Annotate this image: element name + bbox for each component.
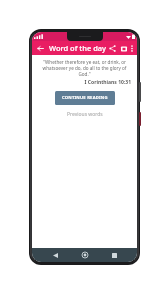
button[interactable]: Back [49, 249, 61, 261]
button[interactable]: CONTINUE READING [55, 91, 115, 105]
button[interactable]: Home [79, 249, 91, 261]
staticText: CONTINUE READING [62, 95, 108, 101]
button[interactable]: Recent apps [108, 249, 120, 261]
staticText: I Corinthians 10:31 [36, 79, 131, 86]
button[interactable]: Save [118, 43, 129, 54]
button[interactable]: Previous words [63, 109, 107, 120]
staticText: "Whether therefore ye eat, or drink, or … [36, 59, 133, 77]
button[interactable]: Back [35, 43, 46, 54]
button[interactable]: Share [107, 43, 118, 54]
button[interactable]: More options [129, 43, 135, 54]
staticText: Previous words [67, 111, 103, 118]
staticText: Word of the day [49, 43, 107, 53]
